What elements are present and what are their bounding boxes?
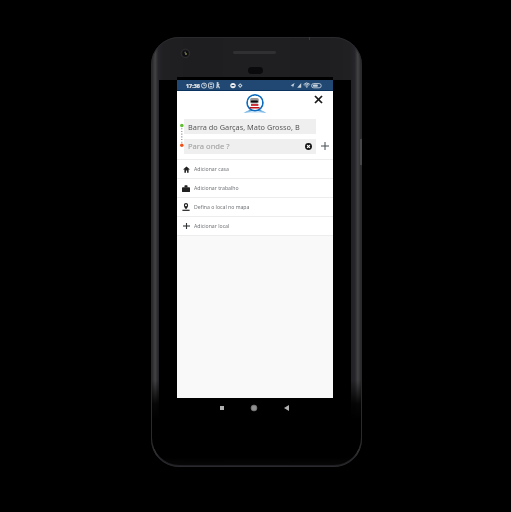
button[interactable]: Defina o local no mapa: [177, 198, 333, 217]
button[interactable]: Clear destination: [303, 141, 314, 152]
button[interactable]: Recents: [215, 401, 229, 415]
button[interactable]: Back: [279, 401, 293, 415]
button[interactable]: Add stop: [319, 140, 330, 151]
button[interactable]: Barra do Garças, Mato Grosso, B: [184, 119, 316, 134]
button[interactable]: Close: [310, 91, 326, 107]
button[interactable]: Para onde ?: [184, 139, 316, 154]
staticText: Defina o local no mapa: [194, 203, 250, 210]
button[interactable]: Adicionar casa: [177, 160, 333, 179]
staticText: Barra do Garças, Mato Grosso, B: [188, 122, 300, 132]
staticText: Adicionar trabalho: [194, 184, 239, 191]
staticText: 17:36: [186, 82, 200, 89]
button[interactable]: Home: [247, 401, 261, 415]
button[interactable]: Adicionar local: [177, 217, 333, 236]
button[interactable]: Adicionar trabalho: [177, 179, 333, 198]
staticText: Adicionar casa: [194, 165, 229, 172]
staticText: Adicionar local: [194, 222, 230, 229]
staticText: Para onde ?: [188, 141, 230, 151]
